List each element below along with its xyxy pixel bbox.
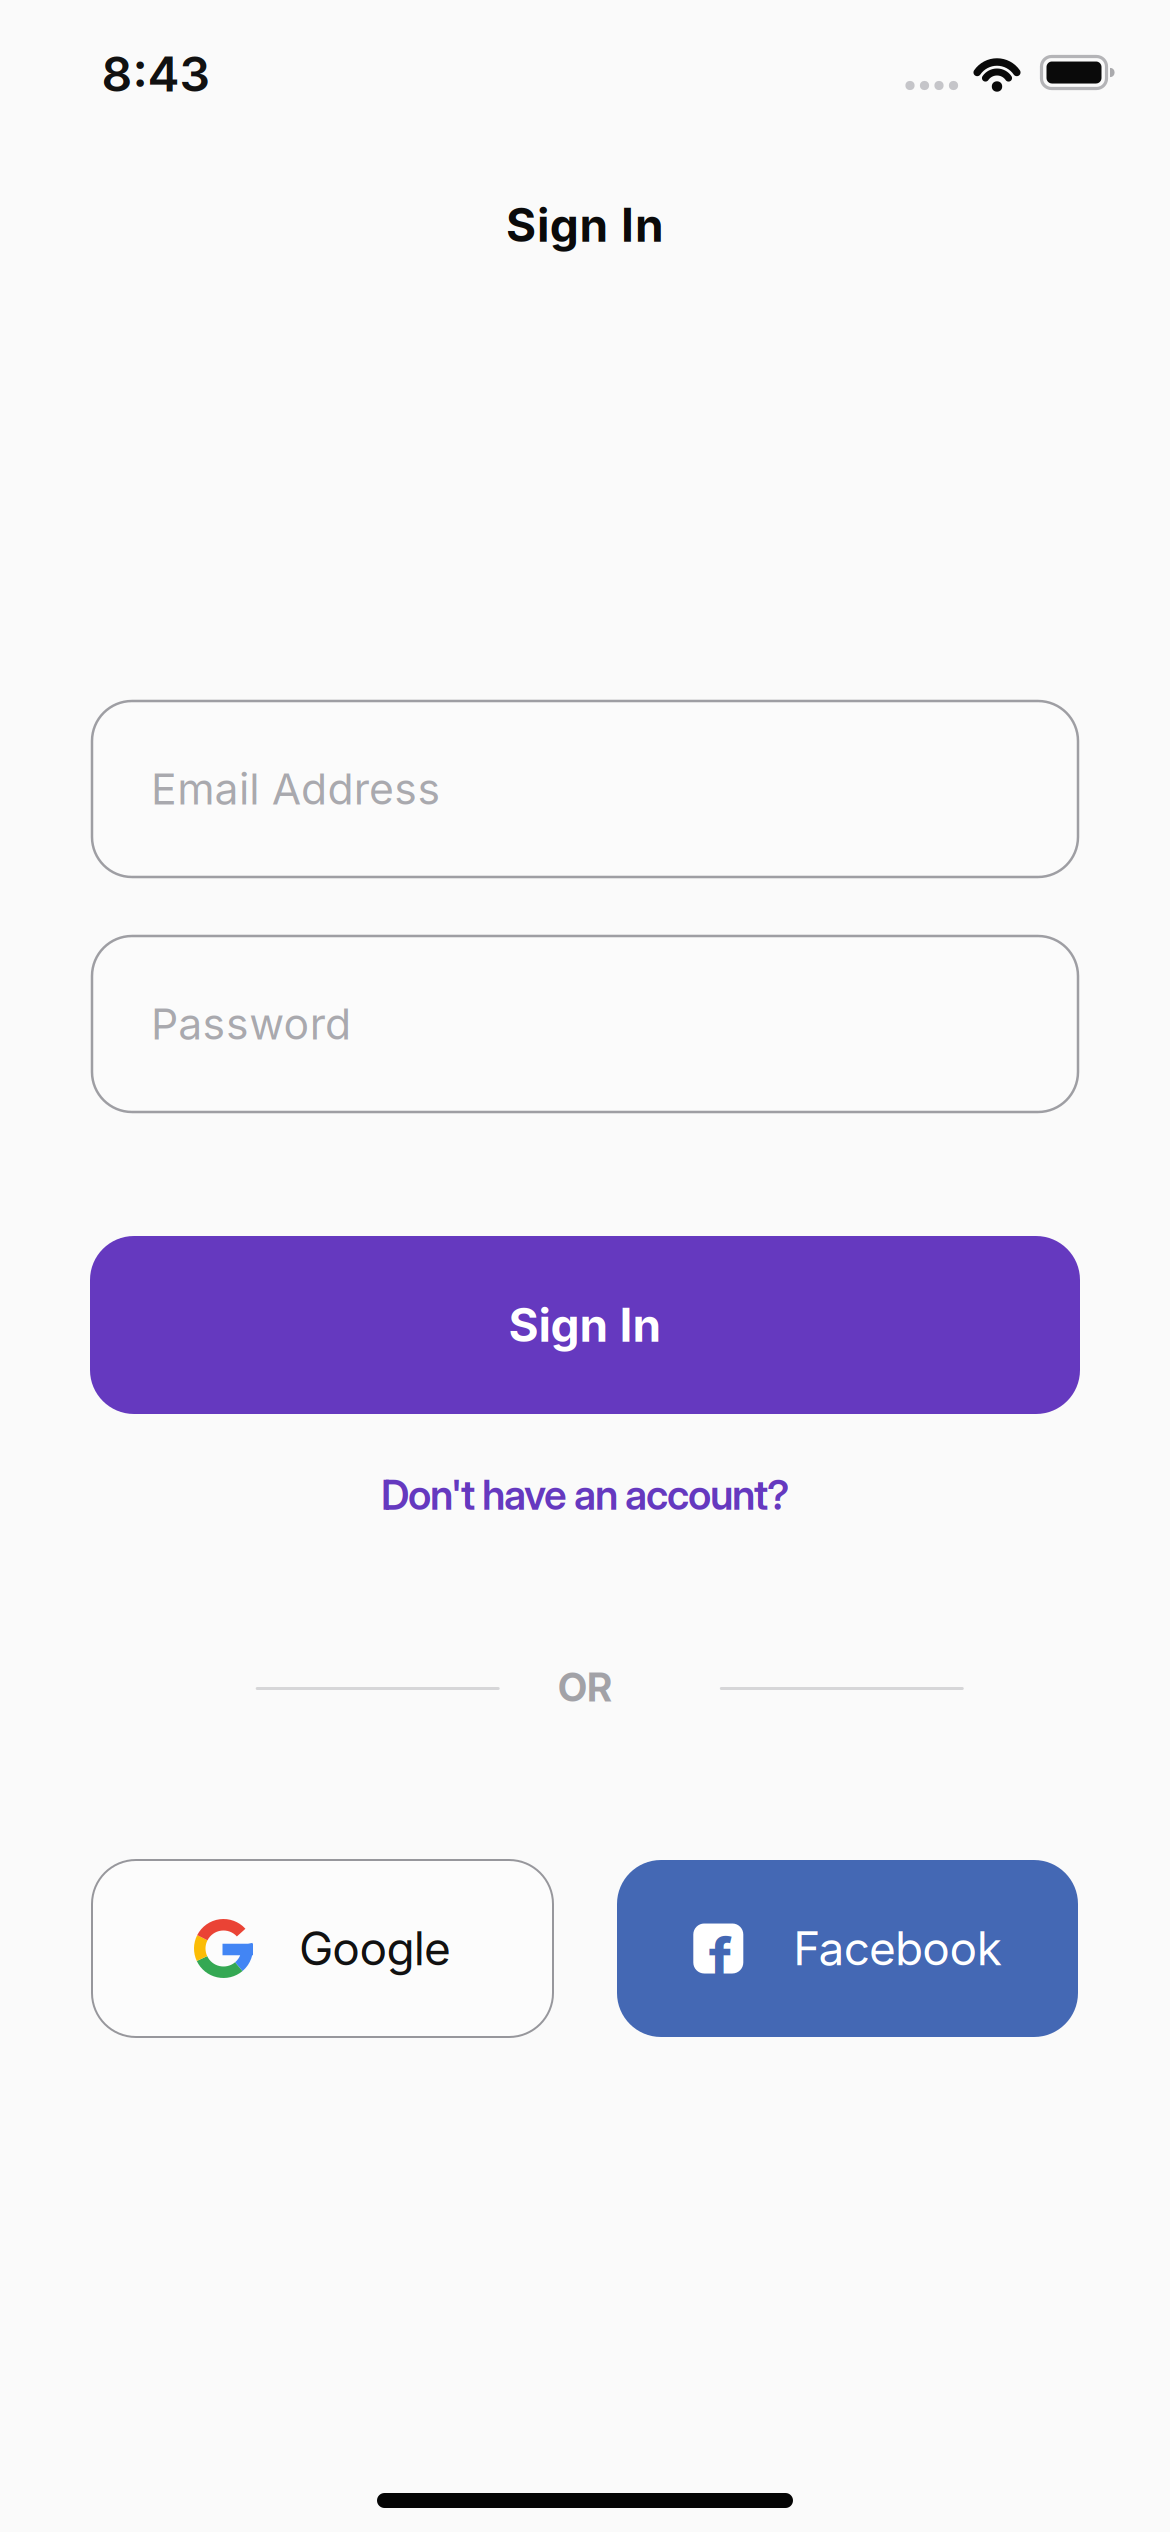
button[interactable]: Email Address <box>92 701 1078 877</box>
staticText: Sign In <box>506 197 664 253</box>
staticText: Google <box>299 1921 451 1976</box>
staticText: Sign In <box>508 1297 661 1353</box>
staticText: OR <box>558 1664 612 1711</box>
button[interactable]: Password <box>92 936 1078 1112</box>
button[interactable]: f <box>617 1860 1078 2037</box>
staticText: Facebook <box>793 1921 1002 1976</box>
button[interactable]: Don't have an account? <box>381 1470 789 1520</box>
staticText: Email Address <box>151 763 441 815</box>
button[interactable]: Google <box>92 1860 553 2037</box>
staticText: Password <box>151 998 351 1050</box>
staticText: Don't have an account? <box>381 1470 789 1520</box>
button[interactable]: Sign In <box>90 1236 1080 1414</box>
staticText: 8:43 <box>101 45 210 103</box>
staticText: f <box>709 1924 732 1995</box>
